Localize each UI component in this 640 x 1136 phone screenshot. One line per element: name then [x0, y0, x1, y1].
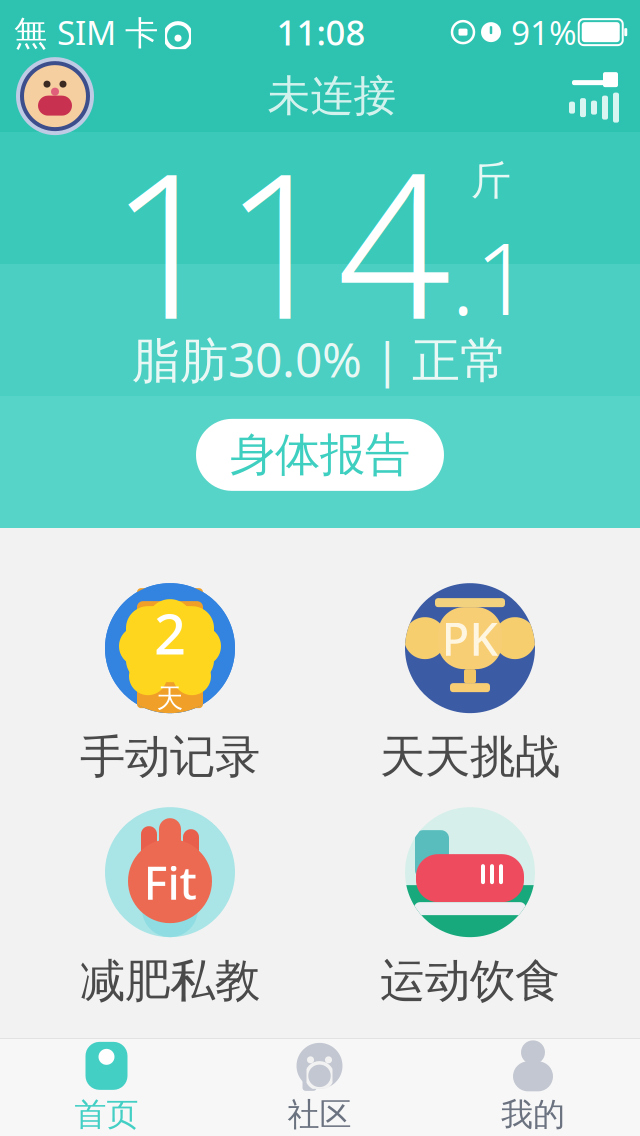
staticText: 未连接 — [267, 70, 396, 122]
staticText: 脂肪30.0% | 正常 — [132, 327, 508, 391]
staticText: 社区 — [287, 1095, 351, 1134]
staticText: 减肥私教 — [80, 953, 260, 1009]
button[interactable]: Fit — [20, 796, 320, 1020]
staticText: PK — [441, 608, 498, 668]
staticText — [475, 20, 480, 44]
staticText: 無 SIM 卡 — [14, 10, 158, 54]
staticText: Fit — [143, 852, 196, 912]
button[interactable]: Profile — [0, 55, 96, 137]
staticText — [577, 23, 580, 41]
staticText: 天 — [156, 682, 183, 715]
button[interactable]: 首页 — [0, 1039, 213, 1136]
button[interactable]: 身体报告 — [196, 419, 444, 491]
staticText: 天天挑战 — [380, 729, 560, 785]
button[interactable]: 社区 — [213, 1039, 426, 1136]
staticText: 11:08 — [276, 9, 365, 55]
button[interactable]: 运动饮食 — [320, 796, 620, 1020]
staticText: 身体报告 — [230, 427, 410, 483]
button[interactable]: Trends — [568, 69, 640, 123]
staticText: 2 — [154, 596, 186, 670]
button[interactable]: 我的 — [426, 1039, 640, 1136]
staticText: 首页 — [74, 1095, 138, 1134]
staticText: 114 — [109, 108, 451, 374]
button[interactable]: 2 — [20, 572, 320, 796]
staticText: 运动饮食 — [380, 953, 560, 1009]
staticText: 我的 — [501, 1095, 565, 1134]
staticText: 手动记录 — [80, 729, 260, 785]
staticText: 斤 — [471, 156, 511, 205]
button[interactable]: PK — [320, 572, 620, 796]
staticText: .1 — [451, 211, 531, 342]
staticText: 91% — [502, 10, 577, 54]
